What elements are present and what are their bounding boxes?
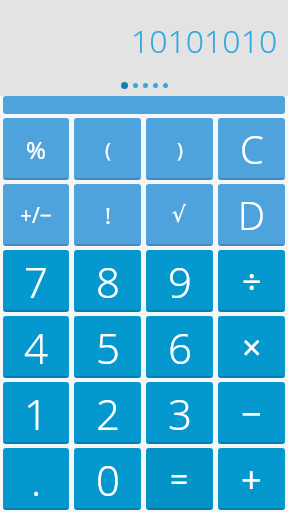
button[interactable]: √ xyxy=(146,184,213,246)
staticText: C xyxy=(240,123,264,175)
staticText: % xyxy=(26,133,46,166)
button[interactable]: 4 xyxy=(3,316,69,378)
staticText: ! xyxy=(105,200,111,230)
button[interactable]: × xyxy=(218,316,285,378)
button[interactable]: 1 xyxy=(3,382,69,444)
staticText: 1 xyxy=(24,385,48,442)
staticText: 0 xyxy=(96,451,120,508)
button[interactable]: +/− xyxy=(3,184,69,246)
button[interactable]: ÷ xyxy=(218,250,285,312)
button[interactable]: = xyxy=(146,448,213,510)
button[interactable]: ! xyxy=(74,184,141,246)
staticText: √ xyxy=(172,202,187,228)
button[interactable]: 0 xyxy=(74,448,141,510)
staticText: 10101010 xyxy=(131,19,278,63)
staticText: 3 xyxy=(168,385,192,442)
staticText: 6 xyxy=(168,319,192,376)
staticText: 9 xyxy=(168,253,192,310)
staticText: 2 xyxy=(96,385,120,442)
button[interactable]: C xyxy=(218,118,285,180)
button[interactable]: . xyxy=(3,448,69,510)
staticText: × xyxy=(242,324,262,370)
button[interactable] xyxy=(3,96,285,114)
staticText: 8 xyxy=(96,253,120,310)
staticText: − xyxy=(241,389,262,438)
button[interactable]: % xyxy=(3,118,69,180)
button[interactable]: 8 xyxy=(74,250,141,312)
button[interactable]: − xyxy=(218,382,285,444)
button[interactable]: 7 xyxy=(3,250,69,312)
button[interactable]: 6 xyxy=(146,316,213,378)
button[interactable]: ) xyxy=(146,118,213,180)
button[interactable]: + xyxy=(218,448,285,510)
staticText: 7 xyxy=(24,253,48,310)
staticText: 5 xyxy=(96,319,120,376)
button[interactable]: 9 xyxy=(146,250,213,312)
staticText: . xyxy=(31,451,42,508)
staticText: = xyxy=(170,457,189,501)
button[interactable]: 3 xyxy=(146,382,213,444)
staticText: ÷ xyxy=(242,258,262,304)
button[interactable]: ( xyxy=(74,118,141,180)
button[interactable]: 5 xyxy=(74,316,141,378)
staticText: 4 xyxy=(24,319,48,376)
button[interactable]: 2 xyxy=(74,382,141,444)
staticText: +/− xyxy=(20,201,52,230)
staticText: ( xyxy=(105,136,111,163)
staticText: ) xyxy=(177,136,183,163)
staticText: + xyxy=(241,455,262,504)
staticText: D xyxy=(238,189,266,241)
button[interactable]: D xyxy=(218,184,285,246)
